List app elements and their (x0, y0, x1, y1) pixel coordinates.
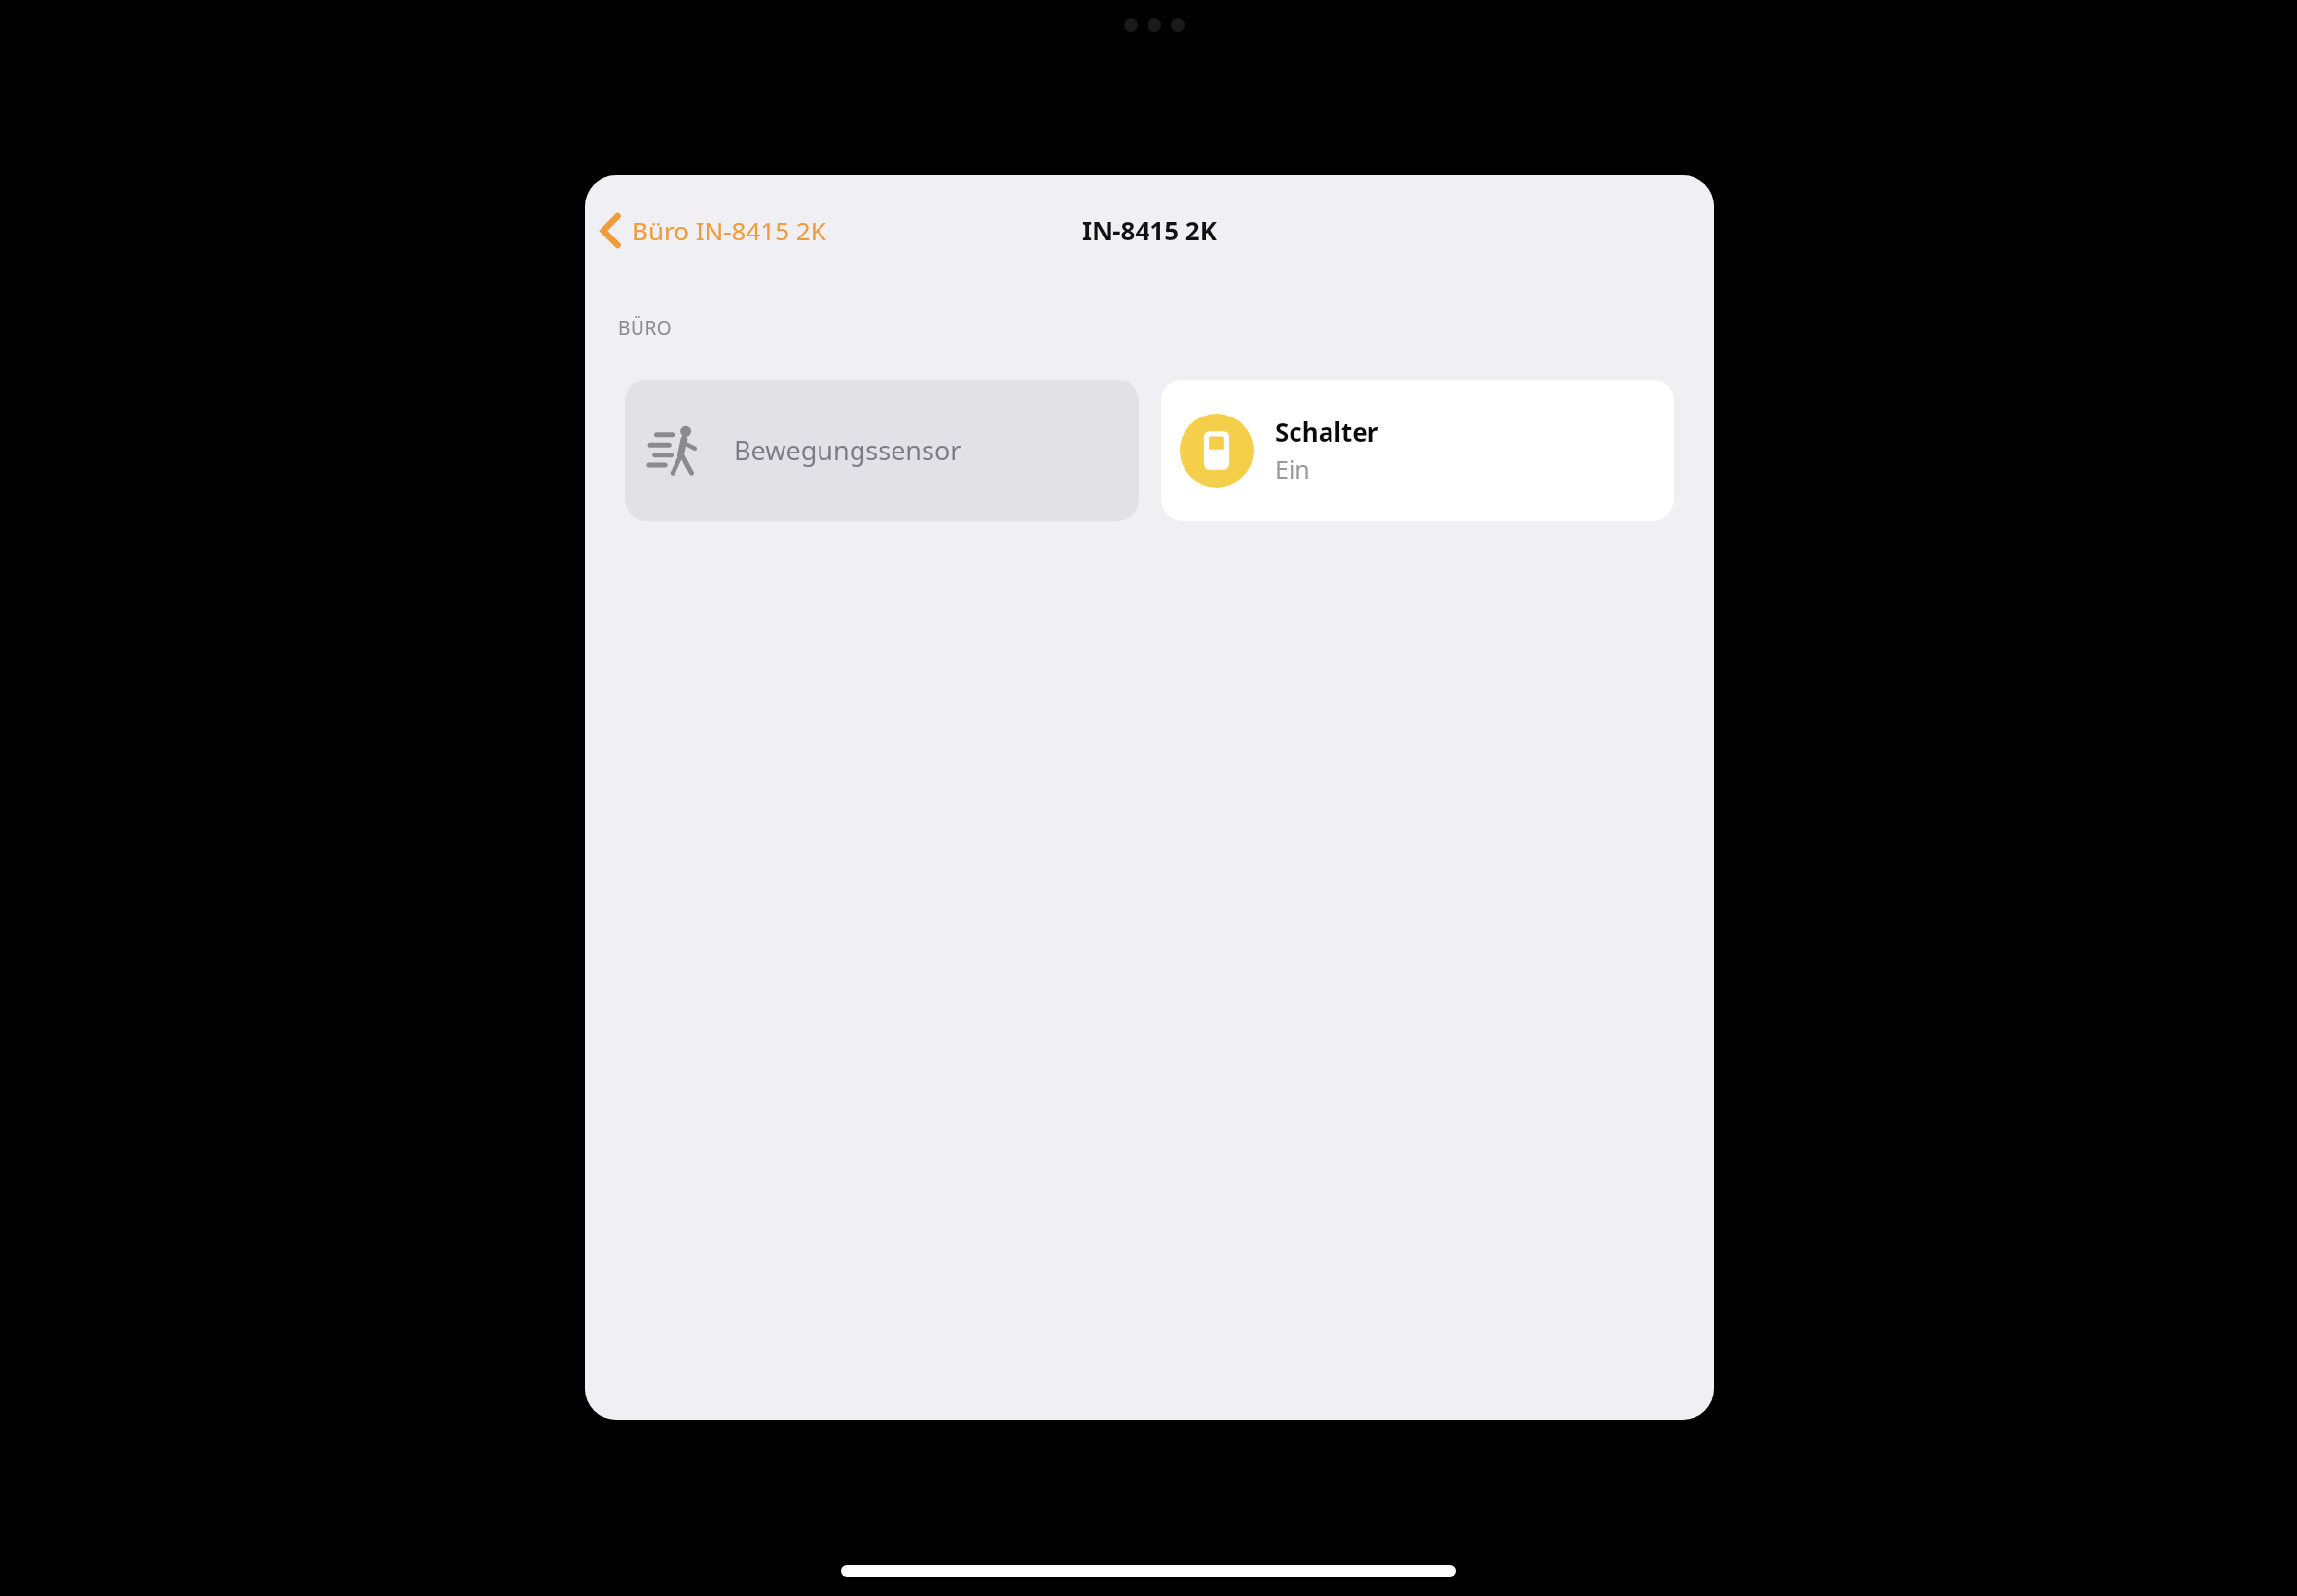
staticText: IN-8415 2K (1082, 213, 1217, 247)
other: Bewegungssensor (646, 422, 703, 479)
button[interactable]: Schalter (1161, 380, 1674, 521)
staticText: Büro IN-8415 2K (632, 213, 826, 247)
staticText: Ein (1275, 453, 1310, 486)
button[interactable]: Büro IN-8415 2K (593, 207, 834, 253)
staticText: Bewegungssensor (734, 432, 962, 468)
staticText: BÜRO (618, 315, 673, 341)
staticText: Schalter (1275, 415, 1379, 449)
other: Schalter (1180, 414, 1254, 488)
button[interactable]: Bewegungssensor (625, 380, 1139, 521)
